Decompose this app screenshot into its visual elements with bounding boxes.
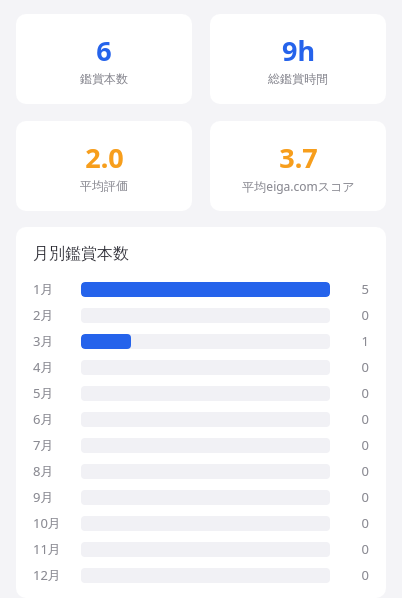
staticText: 9月: [33, 488, 54, 506]
staticText: 0: [361, 540, 369, 558]
staticText: 3.7: [279, 139, 318, 175]
button[interactable]: 1月: [33, 276, 369, 302]
button[interactable]: 9月: [33, 484, 369, 510]
staticText: 5: [361, 280, 369, 298]
staticText: 0: [361, 358, 369, 376]
staticText: 8月: [33, 462, 54, 480]
staticText: 0: [361, 514, 369, 532]
button[interactable]: 11月: [33, 536, 369, 562]
button[interactable]: 7月: [33, 432, 369, 458]
staticText: 月別鑑賞本数: [33, 244, 129, 264]
staticText: 12月: [33, 566, 61, 584]
staticText: 2.0: [85, 139, 124, 175]
staticText: 1: [361, 332, 369, 350]
staticText: 総鑑賞時間: [268, 71, 328, 86]
staticText: 9h: [282, 32, 315, 68]
button[interactable]: 8月: [33, 458, 369, 484]
staticText: 0: [361, 410, 369, 428]
staticText: 1月: [33, 280, 54, 298]
staticText: 3月: [33, 332, 54, 350]
staticText: 2月: [33, 306, 54, 324]
button[interactable]: 10月: [33, 510, 369, 536]
staticText: 4月: [33, 358, 54, 376]
staticText: 0: [361, 436, 369, 454]
button[interactable]: 3月: [33, 328, 369, 354]
staticText: 5月: [33, 384, 54, 402]
staticText: 11月: [33, 540, 61, 558]
button[interactable]: 12月: [33, 562, 369, 588]
button[interactable]: 5月: [33, 380, 369, 406]
button[interactable]: 2月: [33, 302, 369, 328]
staticText: 0: [361, 384, 369, 402]
staticText: 平均評価: [80, 178, 128, 193]
staticText: 0: [361, 462, 369, 480]
button[interactable]: 2.0: [16, 121, 192, 211]
staticText: 0: [361, 488, 369, 506]
staticText: 平均eiga.comスコア: [242, 178, 355, 194]
staticText: 10月: [33, 514, 61, 532]
staticText: 6月: [33, 410, 54, 428]
button[interactable]: 6: [16, 14, 192, 104]
button[interactable]: 3.7: [210, 121, 386, 211]
staticText: 7月: [33, 436, 54, 454]
button[interactable]: 9h: [210, 14, 386, 104]
staticText: 0: [361, 566, 369, 584]
button[interactable]: 4月: [33, 354, 369, 380]
staticText: 鑑賞本数: [80, 71, 128, 86]
staticText: 0: [361, 306, 369, 324]
staticText: 6: [96, 32, 112, 68]
button[interactable]: 6月: [33, 406, 369, 432]
